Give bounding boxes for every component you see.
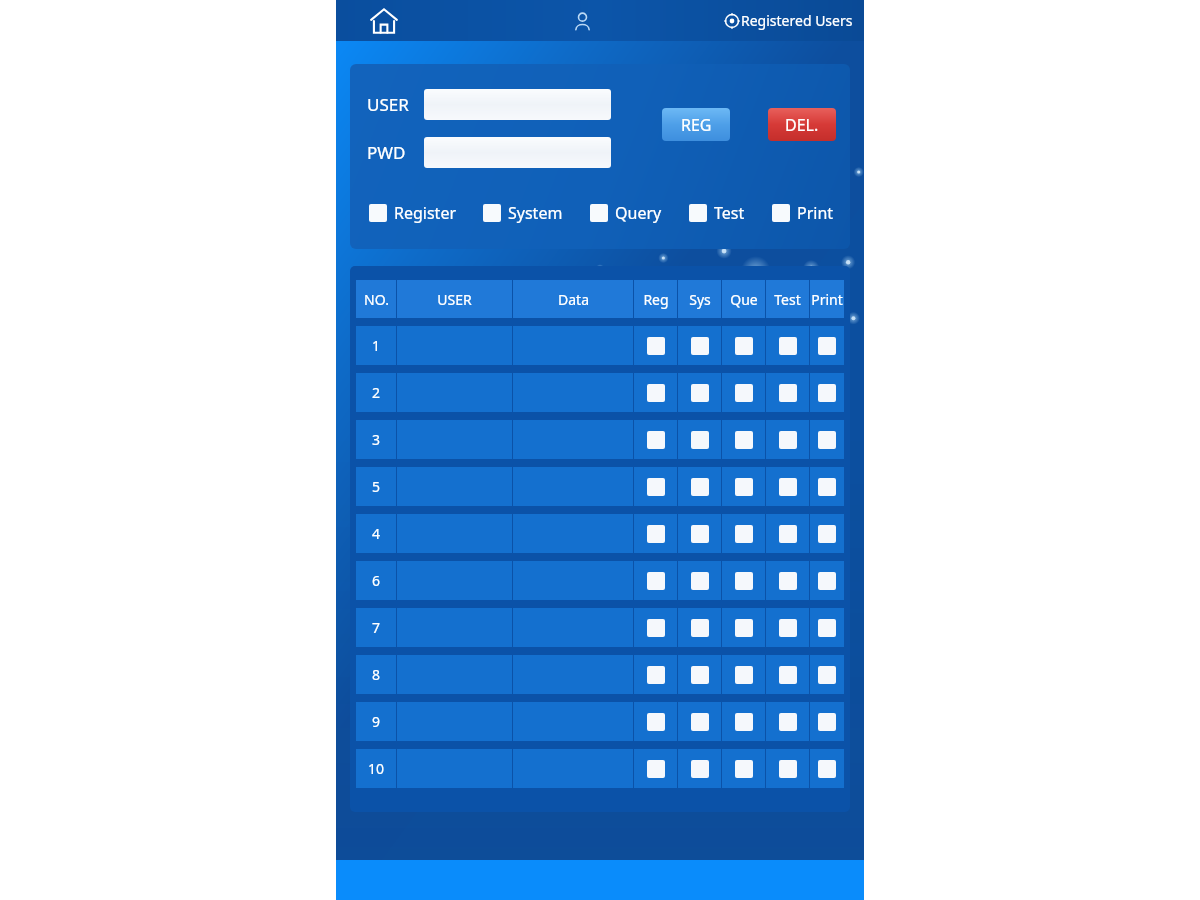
button[interactable]: 7 [356,608,396,647]
button[interactable]: Registered Users [723,7,855,34]
button[interactable]: Checkbox [634,467,677,506]
button[interactable]: Checkbox [647,760,665,778]
button[interactable]: Checkbox [810,514,844,553]
button[interactable]: Checkbox [810,420,844,459]
button[interactable]: Checkbox [678,749,721,788]
button[interactable]: Checkbox [691,525,709,543]
button[interactable]: REG [662,108,730,141]
button[interactable]: Text input [424,137,611,168]
button[interactable]: Checkbox [722,420,765,459]
button[interactable]: Checkbox [735,572,753,590]
button[interactable]: Checkbox [634,373,677,412]
button[interactable]: Checkbox [735,525,753,543]
button[interactable]: Checkbox [678,702,721,741]
button[interactable]: Checkbox [818,384,836,402]
button[interactable]: Checkbox [766,514,809,553]
button[interactable]: Checkbox [766,467,809,506]
button[interactable]: Checkbox [818,619,836,637]
button[interactable]: Checkbox [634,608,677,647]
button[interactable]: Checkbox [722,608,765,647]
button[interactable]: Checkbox [810,702,844,741]
button[interactable]: Checkbox [818,337,836,355]
button[interactable]: Checkbox [691,666,709,684]
button[interactable]: Checkbox [647,431,665,449]
button[interactable]: Checkbox [818,713,836,731]
button[interactable]: Checkbox [818,478,836,496]
button[interactable]: Checkbox [810,467,844,506]
button[interactable]: Text input [424,89,611,120]
button[interactable]: Checkbox [691,713,709,731]
button[interactable]: Checkbox [634,326,677,365]
button[interactable]: Checkbox [818,431,836,449]
button[interactable]: Checkbox [647,478,665,496]
button[interactable]: Checkbox [678,420,721,459]
button[interactable]: Checkbox [634,702,677,741]
button[interactable]: Checkbox [766,326,809,365]
button[interactable]: Checkbox [647,619,665,637]
button[interactable]: Checkbox [634,655,677,694]
button[interactable]: Checkbox [779,666,797,684]
button[interactable]: Query [588,200,664,226]
button[interactable]: Checkbox [810,326,844,365]
button[interactable]: Checkbox [818,760,836,778]
button[interactable]: 2 [356,373,396,412]
button[interactable]: Checkbox [647,525,665,543]
button[interactable]: Checkbox [691,384,709,402]
button[interactable]: Checkbox [735,478,753,496]
button[interactable]: Checkbox [678,655,721,694]
button[interactable]: Checkbox [735,713,753,731]
button[interactable]: Checkbox [722,749,765,788]
button[interactable]: Checkbox [779,384,797,402]
button[interactable]: Checkbox [647,666,665,684]
button[interactable]: Checkbox [766,561,809,600]
button[interactable]: Checkbox [766,749,809,788]
button[interactable]: Checkbox [722,373,765,412]
button[interactable]: Checkbox [735,619,753,637]
button[interactable]: Checkbox [634,561,677,600]
button[interactable]: Test [687,200,747,226]
button[interactable]: Checkbox [691,478,709,496]
button[interactable]: Checkbox [735,431,753,449]
button[interactable]: Checkbox [647,572,665,590]
button[interactable]: Checkbox [722,467,765,506]
button[interactable]: Checkbox [810,373,844,412]
button[interactable]: Checkbox [634,749,677,788]
button[interactable]: Checkbox [678,467,721,506]
button[interactable]: 3 [356,420,396,459]
button[interactable]: Checkbox [779,619,797,637]
button[interactable]: Print [770,200,836,226]
button[interactable]: Checkbox [818,525,836,543]
button[interactable]: Checkbox [766,420,809,459]
button[interactable]: Checkbox [779,337,797,355]
button[interactable]: Checkbox [722,514,765,553]
button[interactable]: Checkbox [766,608,809,647]
button[interactable]: Checkbox [818,666,836,684]
button[interactable]: 10 [356,749,396,788]
button[interactable]: Checkbox [735,760,753,778]
button[interactable]: 8 [356,655,396,694]
button[interactable]: Checkbox [647,384,665,402]
button[interactable]: Checkbox [735,337,753,355]
button[interactable]: Checkbox [766,655,809,694]
button[interactable]: Checkbox [779,572,797,590]
button[interactable]: Checkbox [735,666,753,684]
button[interactable]: Checkbox [647,337,665,355]
button[interactable]: Checkbox [678,326,721,365]
button[interactable]: Checkbox [722,655,765,694]
button[interactable]: Checkbox [678,608,721,647]
button[interactable]: Checkbox [722,702,765,741]
button[interactable]: Checkbox [779,760,797,778]
